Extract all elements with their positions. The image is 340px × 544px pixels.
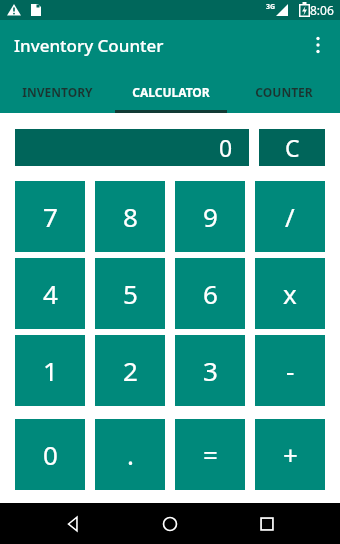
staticText: CALCULATOR — [132, 84, 210, 100]
button[interactable]: + — [255, 419, 325, 490]
staticText: 3 — [203, 353, 218, 388]
button[interactable]: 3 — [175, 335, 245, 406]
button[interactable]: . — [95, 419, 165, 490]
staticText: = — [203, 437, 218, 472]
button[interactable]: 7 — [15, 181, 85, 252]
staticText: 0 — [43, 437, 58, 472]
staticText: / — [285, 199, 295, 234]
staticText: 8 — [123, 199, 138, 234]
button[interactable]: 9 — [175, 181, 245, 252]
staticText: COUNTER — [255, 84, 313, 100]
button[interactable]: = — [175, 419, 245, 490]
staticText: 1 — [43, 353, 58, 388]
staticText: Inventory Counter — [14, 34, 164, 57]
button[interactable]: C — [259, 129, 325, 166]
staticText: + — [283, 437, 298, 472]
button[interactable]: 1 — [15, 335, 85, 406]
staticText: 8:06 — [310, 2, 334, 18]
button[interactable]: 8 — [95, 181, 165, 252]
staticText: 2 — [123, 353, 138, 388]
staticText: 5 — [123, 276, 138, 311]
staticText: . — [127, 437, 134, 472]
button[interactable]: / — [255, 181, 325, 252]
button[interactable]: INVENTORY — [0, 70, 114, 113]
button[interactable]: x — [255, 258, 325, 329]
button[interactable]: Back — [49, 503, 97, 544]
button[interactable]: 0 — [15, 129, 249, 166]
button[interactable]: - — [255, 335, 325, 406]
staticText: 0 — [219, 132, 233, 163]
staticText: x — [283, 276, 297, 311]
button[interactable]: 5 — [95, 258, 165, 329]
staticText: - — [286, 353, 295, 388]
staticText: 9 — [203, 199, 218, 234]
button[interactable]: CALCULATOR — [114, 70, 227, 113]
staticText: 4 — [43, 276, 58, 311]
staticText: 6 — [203, 276, 218, 311]
staticText: 3G — [266, 2, 276, 12]
button[interactable]: More options — [296, 23, 340, 67]
button[interactable]: 0 — [15, 419, 85, 490]
staticText: C — [285, 132, 300, 163]
staticText: 7 — [43, 199, 58, 234]
button[interactable]: 6 — [175, 258, 245, 329]
button[interactable]: 2 — [95, 335, 165, 406]
staticText: INVENTORY — [22, 84, 93, 100]
button[interactable]: Home — [146, 503, 194, 544]
button[interactable]: 4 — [15, 258, 85, 329]
button[interactable]: COUNTER — [227, 70, 340, 113]
button[interactable]: Recent apps — [243, 503, 291, 544]
